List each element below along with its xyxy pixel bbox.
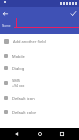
- staticText: Default icon: [12, 96, 35, 101]
- staticText: SMS: [12, 78, 21, 83]
- button[interactable]: Mobile: [0, 50, 79, 62]
- staticText: Default color: [12, 110, 37, 115]
- button[interactable]: Add another field: [0, 35, 79, 47]
- staticText: Name: [2, 24, 11, 28]
- button[interactable]: Default color: [0, 105, 79, 119]
- staticText: Dialog: [12, 66, 25, 71]
- button[interactable]: SMS: [0, 74, 79, 91]
- staticText: +94 xxx: [12, 83, 25, 88]
- button[interactable]: Default icon: [0, 91, 79, 105]
- button[interactable]: Dialog: [0, 62, 79, 74]
- button[interactable]: Recent apps: [56, 128, 68, 140]
- button[interactable]: Back: [11, 128, 23, 140]
- staticText: Add another field: [13, 39, 46, 44]
- staticText: Mobile: [12, 54, 25, 59]
- button[interactable]: Save: [68, 7, 79, 18]
- button[interactable]: Back: [0, 7, 11, 18]
- button[interactable]: Home: [34, 128, 46, 140]
